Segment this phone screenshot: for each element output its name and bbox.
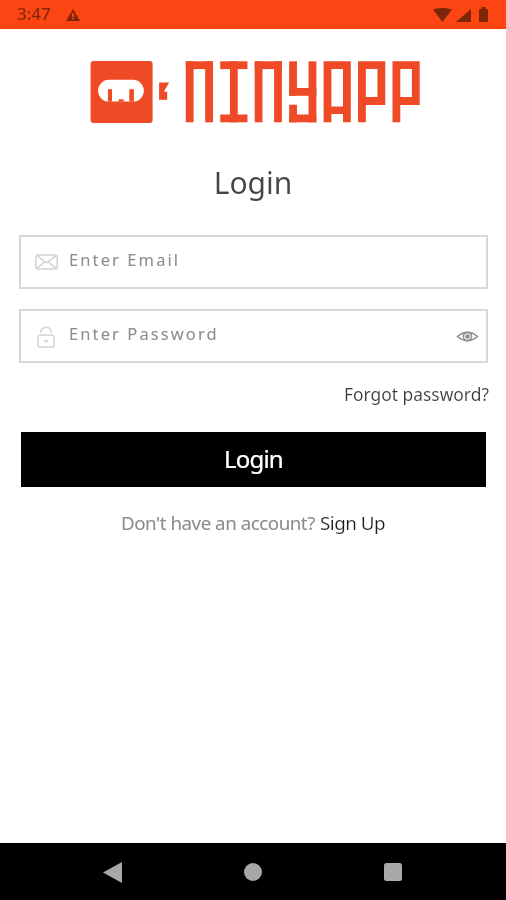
- staticText: Enter Password: [69, 322, 219, 344]
- button[interactable]: Forgot password?: [332, 374, 506, 414]
- button[interactable]: Enter Password: [19, 309, 488, 363]
- button[interactable]: Enter Email: [19, 235, 488, 289]
- staticText: 3:47: [17, 2, 51, 25]
- staticText: Sign Up: [320, 510, 386, 536]
- staticText: Don't have an account?: [121, 510, 320, 536]
- button[interactable]: Don't have an account?: [121, 510, 386, 536]
- staticText: Login: [0, 162, 506, 203]
- button[interactable]: Login: [21, 432, 486, 487]
- button[interactable]: Recent apps: [369, 848, 417, 896]
- button[interactable]: Back: [88, 848, 136, 896]
- button[interactable]: Home: [229, 848, 277, 896]
- staticText: Login: [224, 442, 283, 475]
- button[interactable]: Show password: [452, 321, 482, 351]
- staticText: Enter Email: [69, 248, 181, 270]
